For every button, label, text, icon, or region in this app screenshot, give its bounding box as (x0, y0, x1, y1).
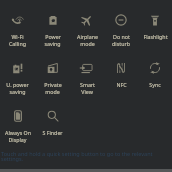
button[interactable]: Sync (138, 48, 172, 96)
button[interactable]: Ultra power saving (0, 48, 35, 96)
staticText: Flashlight (143, 33, 168, 40)
staticText: Display (8, 136, 27, 143)
button[interactable]: NFC (104, 48, 138, 96)
staticText: Calling (9, 40, 26, 47)
button[interactable]: Private mode (35, 48, 70, 96)
staticText: NFC (116, 81, 127, 88)
button[interactable]: Flashlight (138, 0, 172, 48)
staticText: Private (44, 81, 62, 88)
button[interactable]: Smart View (70, 48, 104, 96)
staticText: U. power (6, 81, 29, 88)
staticText: mode (80, 40, 95, 47)
staticText: Smart (80, 81, 95, 88)
staticText: Sync (149, 81, 161, 88)
staticText: Always On (5, 129, 31, 136)
staticText: Airplane (77, 33, 98, 40)
staticText: disturb (112, 40, 130, 47)
button[interactable]: Do not disturb (104, 0, 138, 48)
staticText: saving (9, 88, 26, 95)
staticText: Do not (113, 33, 130, 40)
staticText: Wi-Fi (11, 33, 24, 40)
button[interactable]: Airplane mode (70, 0, 104, 48)
button[interactable]: Power saving (35, 0, 70, 48)
staticText: mode (45, 88, 60, 95)
staticText: Touch and hold a quick setting button to… (1, 150, 166, 163)
staticText: saving (44, 40, 61, 47)
staticText: View (81, 88, 93, 95)
staticText: Power (45, 33, 61, 40)
button[interactable]: Always On Display (0, 96, 35, 144)
button[interactable]: S Finder (35, 96, 70, 144)
staticText: S Finder (42, 129, 63, 136)
button[interactable]: Wi-Fi Calling (0, 0, 35, 48)
